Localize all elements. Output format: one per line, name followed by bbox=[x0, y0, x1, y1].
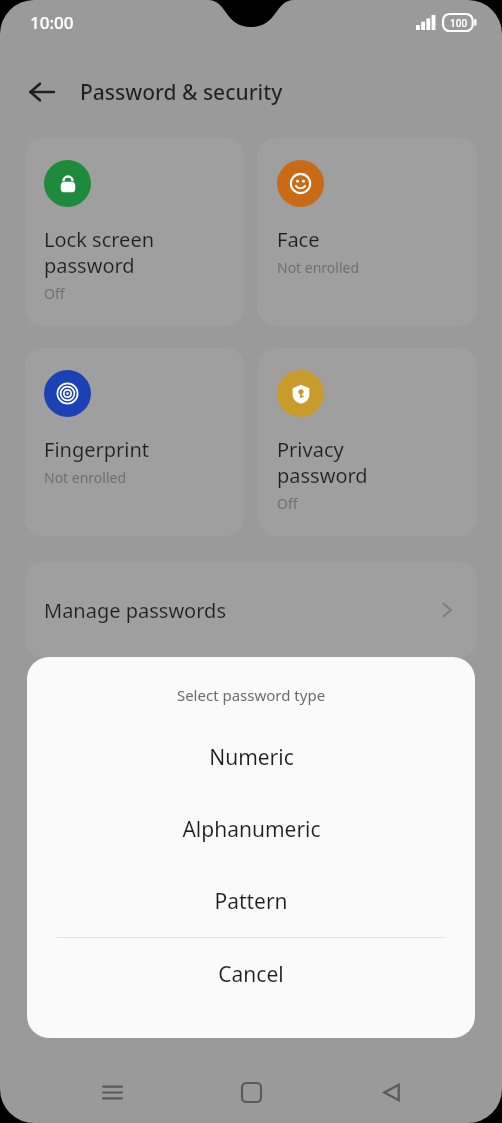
button[interactable]: Pattern bbox=[27, 865, 475, 937]
staticText: Fingerprint bbox=[44, 436, 150, 463]
button[interactable]: Back bbox=[18, 68, 66, 116]
staticText: Lock screen password bbox=[44, 226, 155, 279]
staticText: Not enrolled bbox=[44, 468, 127, 487]
button[interactable]: Manage passwords bbox=[25, 562, 477, 658]
button[interactable]: Face bbox=[258, 138, 477, 326]
staticText: Numeric bbox=[209, 743, 294, 772]
staticText: 10:00 bbox=[30, 11, 74, 34]
button[interactable]: Lock screen password bbox=[25, 138, 244, 326]
button[interactable]: Cancel bbox=[27, 938, 475, 1010]
staticText: Off bbox=[277, 494, 298, 513]
button[interactable]: Fingerprint bbox=[25, 348, 244, 536]
staticText: Select password type bbox=[27, 685, 475, 705]
button[interactable]: Alphanumeric bbox=[27, 793, 475, 865]
button[interactable]: Back bbox=[363, 1064, 419, 1120]
staticText: Not enrolled bbox=[277, 258, 360, 277]
staticText: Face bbox=[277, 226, 320, 253]
staticText: Password & security bbox=[80, 78, 283, 107]
staticText: Cancel bbox=[218, 960, 284, 989]
staticText: 100 bbox=[450, 16, 468, 30]
staticText: Alphanumeric bbox=[182, 815, 321, 844]
button[interactable]: Numeric bbox=[27, 721, 475, 793]
button[interactable]: Privacy password bbox=[258, 348, 477, 536]
staticText: Privacy password bbox=[277, 436, 368, 489]
staticText: Off bbox=[44, 284, 65, 303]
staticText: Manage passwords bbox=[44, 597, 226, 624]
staticText: Pattern bbox=[214, 887, 288, 916]
button[interactable]: Home bbox=[223, 1064, 279, 1120]
button[interactable]: Recents bbox=[84, 1064, 140, 1120]
